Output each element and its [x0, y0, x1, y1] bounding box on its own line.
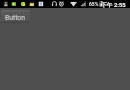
staticText: 65%: [89, 1, 99, 7]
staticText: 下午 2:55: [101, 1, 126, 8]
staticText: Button: [5, 14, 25, 22]
button[interactable]: Button: [1, 10, 30, 23]
